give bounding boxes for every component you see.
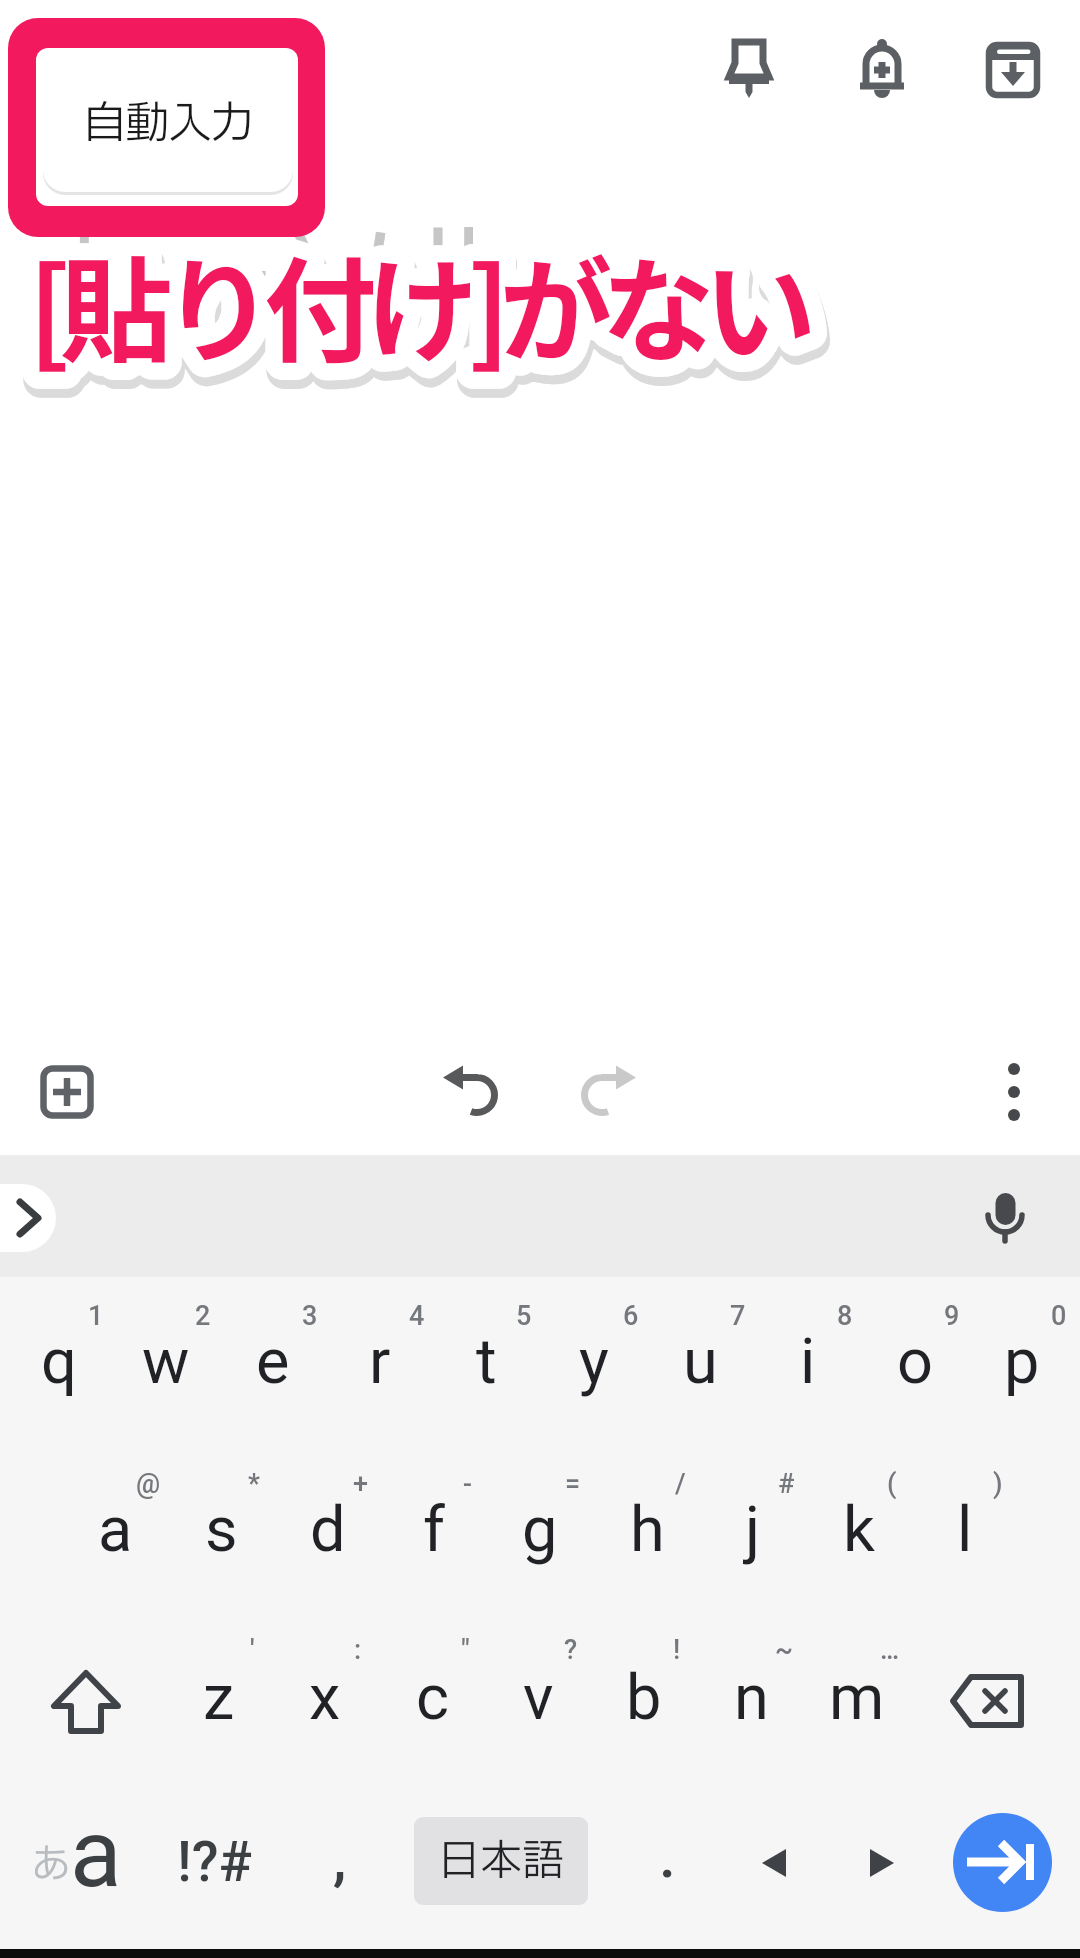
staticText: p <box>1004 1325 1040 1399</box>
staticText: ~ <box>775 1634 793 1666</box>
button[interactable]: e <box>219 1302 326 1422</box>
staticText: o <box>897 1325 933 1399</box>
staticText: d <box>310 1493 346 1567</box>
button[interactable] <box>742 1829 810 1897</box>
staticText: a <box>70 1798 122 1909</box>
staticText: 0 <box>1051 1300 1067 1332</box>
button[interactable]: c <box>379 1638 485 1758</box>
staticText: 9 <box>944 1300 960 1332</box>
staticText: ' <box>250 1634 255 1666</box>
button[interactable] <box>851 40 913 102</box>
button[interactable]: i <box>754 1302 861 1422</box>
staticText: y <box>579 1325 609 1399</box>
button[interactable]: s <box>168 1470 274 1590</box>
button[interactable]: v <box>485 1638 591 1758</box>
staticText: q <box>41 1325 77 1399</box>
button[interactable]: p <box>968 1302 1075 1422</box>
button[interactable]: !?# <box>155 1817 275 1907</box>
button[interactable] <box>846 1829 914 1897</box>
button[interactable]: x <box>272 1638 378 1758</box>
staticText: , <box>333 1823 347 1893</box>
button[interactable] <box>975 1188 1035 1248</box>
button[interactable]: k <box>806 1470 912 1590</box>
button[interactable] <box>718 40 780 102</box>
staticText: = <box>565 1468 581 1500</box>
button[interactable] <box>0 1184 56 1252</box>
staticText: - <box>463 1468 472 1500</box>
staticText: r <box>369 1325 391 1399</box>
button[interactable]: r <box>326 1302 433 1422</box>
button[interactable]: f <box>381 1470 487 1590</box>
staticText: ! <box>673 1634 681 1666</box>
button[interactable] <box>40 1662 132 1742</box>
staticText: !?# <box>177 1830 253 1894</box>
staticText: あ <box>31 1836 71 1896</box>
staticText: k <box>843 1493 875 1567</box>
button[interactable]: a <box>61 1793 131 1913</box>
button[interactable]: t <box>433 1302 540 1422</box>
staticText: ( <box>887 1468 897 1500</box>
button[interactable] <box>953 1813 1052 1912</box>
button[interactable]: l <box>912 1470 1018 1590</box>
button[interactable]: d <box>275 1470 381 1590</box>
staticText: m <box>829 1661 885 1735</box>
staticText: : <box>354 1634 362 1666</box>
staticText: ? <box>564 1634 578 1666</box>
button[interactable]: 日本語 <box>414 1817 588 1905</box>
button[interactable] <box>576 1062 638 1124</box>
staticText: + <box>353 1468 369 1500</box>
staticText: 2 <box>195 1300 211 1332</box>
button[interactable] <box>441 1062 503 1124</box>
staticText: 5 <box>516 1300 532 1332</box>
button[interactable] <box>947 1662 1039 1742</box>
button[interactable]: , <box>310 1818 370 1898</box>
staticText: 7 <box>730 1300 746 1332</box>
staticText: s <box>205 1493 238 1567</box>
staticText: c <box>416 1661 449 1735</box>
staticText: # <box>778 1468 795 1500</box>
button[interactable] <box>983 1061 1045 1123</box>
button[interactable]: 自動入力 <box>43 55 293 192</box>
staticText: 日本語 <box>438 1830 565 1893</box>
staticText: h <box>630 1493 665 1567</box>
button[interactable]: q <box>5 1302 112 1422</box>
staticText: 自動入力 <box>83 91 253 157</box>
staticText: n <box>734 1661 769 1735</box>
button[interactable]: o <box>861 1302 968 1422</box>
staticText: u <box>683 1325 718 1399</box>
button[interactable]: a <box>62 1470 168 1590</box>
button[interactable]: g <box>487 1470 593 1590</box>
button[interactable]: w <box>112 1302 219 1422</box>
staticText: カーソル <box>30 192 523 378</box>
button[interactable]: u <box>647 1302 754 1422</box>
staticText: i <box>800 1325 816 1399</box>
staticText: 8 <box>837 1300 853 1332</box>
button[interactable]: j <box>700 1470 806 1590</box>
button[interactable] <box>36 1061 98 1123</box>
staticText: b <box>626 1661 662 1735</box>
staticText: f <box>423 1493 445 1567</box>
button[interactable]: h <box>594 1470 700 1590</box>
staticText: / <box>675 1468 686 1500</box>
staticText: g <box>522 1493 558 1567</box>
staticText: z <box>203 1661 235 1735</box>
staticText: 1 <box>88 1300 104 1332</box>
button[interactable]: m <box>804 1638 910 1758</box>
staticText: … <box>880 1634 900 1666</box>
staticText: . <box>659 1821 676 1891</box>
button[interactable]: n <box>698 1638 804 1758</box>
button[interactable]: b <box>591 1638 697 1758</box>
button[interactable]: z <box>166 1638 272 1758</box>
staticText: j <box>745 1493 761 1567</box>
staticText: 6 <box>623 1300 639 1332</box>
button[interactable]: y <box>540 1302 647 1422</box>
staticText: @ <box>136 1468 161 1500</box>
staticText: t <box>476 1325 497 1399</box>
staticText: ) <box>993 1468 1003 1500</box>
staticText: v <box>523 1661 554 1735</box>
staticText: [貼り付け]がない <box>28 221 806 385</box>
staticText: e <box>256 1325 290 1399</box>
staticText: a <box>98 1493 133 1567</box>
button[interactable]: . <box>637 1816 697 1896</box>
button[interactable] <box>982 40 1044 102</box>
